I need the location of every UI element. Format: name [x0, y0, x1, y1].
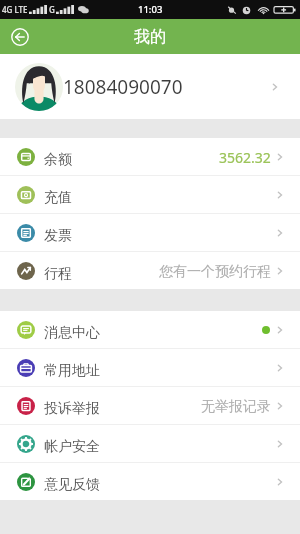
staticText: 您有一个预约行程 — [159, 263, 271, 281]
staticText: 余额 — [44, 151, 72, 169]
staticText: G — [49, 4, 55, 15]
staticText: 帐户安全 — [44, 438, 100, 456]
staticText: 无举报记录 — [201, 398, 271, 416]
button[interactable]: 帐户安全 — [0, 425, 300, 462]
button[interactable]: 消息中心 — [0, 311, 300, 348]
button[interactable]: 充值 — [0, 176, 300, 213]
staticText: 常用地址 — [44, 362, 100, 380]
button[interactable]: 常用地址 — [0, 349, 300, 386]
button[interactable]: 发票 — [0, 214, 300, 251]
button[interactable]: 18084090070 — [0, 54, 300, 119]
staticText: 充值 — [44, 189, 72, 207]
staticText: 3562.32 — [219, 148, 271, 167]
staticText: 投诉举报 — [44, 400, 100, 418]
staticText: 发票 — [44, 227, 72, 245]
staticText: 消息中心 — [44, 324, 100, 342]
staticText: 我的 — [134, 27, 166, 47]
button[interactable]: Back — [8, 25, 32, 49]
staticText: 行程 — [44, 265, 72, 283]
staticText: 4G LTE — [2, 4, 28, 15]
button[interactable]: 行程 — [0, 252, 300, 289]
staticText: 意见反馈 — [44, 476, 100, 494]
button[interactable]: 余额 — [0, 138, 300, 175]
staticText: 18084090070 — [63, 74, 183, 100]
button[interactable]: 投诉举报 — [0, 387, 300, 424]
staticText: 11:03 — [138, 3, 163, 16]
button[interactable]: 意见反馈 — [0, 463, 300, 500]
